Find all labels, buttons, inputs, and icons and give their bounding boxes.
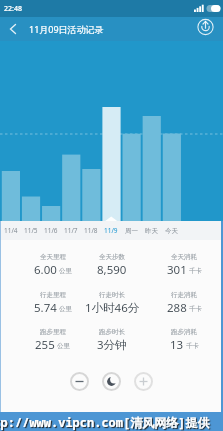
- staticText: 5.74: [34, 300, 57, 316]
- staticText: 千卡: [186, 342, 199, 350]
- staticText: 今天: [165, 227, 178, 235]
- staticText: 周一: [125, 227, 138, 235]
- staticText: 全天消耗: [171, 253, 197, 261]
- button[interactable]: [102, 372, 121, 391]
- button[interactable]: 11/5: [21, 221, 41, 240]
- staticText: 公里: [59, 305, 72, 313]
- staticText: 全天步数: [99, 253, 125, 261]
- button[interactable]: [70, 372, 89, 391]
- staticText: 11/9: [104, 226, 118, 235]
- staticText: 11/8: [84, 226, 98, 235]
- staticText: 3分钟: [97, 337, 127, 353]
- button[interactable]: 今天: [161, 221, 181, 240]
- button[interactable]: 11/8: [81, 221, 101, 240]
- staticText: 6.00: [34, 262, 57, 278]
- button[interactable]: [189, 17, 223, 41]
- staticText: 全天里程: [40, 253, 66, 261]
- button[interactable]: 11/7: [61, 221, 81, 240]
- button[interactable]: 11/6: [41, 221, 61, 240]
- staticText: 11月09日活动记录: [29, 23, 104, 35]
- button[interactable]: 周一: [121, 221, 141, 240]
- staticText: 行走消耗: [171, 291, 197, 299]
- button[interactable]: 昨天: [141, 221, 161, 240]
- staticText: 13: [170, 337, 184, 353]
- staticText: 跑步里程: [40, 328, 66, 336]
- staticText: 行走时长: [99, 291, 125, 299]
- staticText: 11/6: [44, 226, 58, 235]
- staticText: 千卡: [189, 267, 202, 275]
- button[interactable]: [134, 372, 153, 391]
- staticText: 288: [167, 300, 187, 316]
- button[interactable]: [0, 17, 26, 41]
- button[interactable]: 11/4: [1, 221, 21, 240]
- staticText: 255: [35, 337, 55, 353]
- staticText: 千卡: [189, 305, 202, 313]
- staticText: 昨天: [145, 227, 158, 235]
- staticText: 11/4: [4, 226, 18, 235]
- staticText: 22:48: [4, 4, 22, 14]
- staticText: 8,590: [97, 262, 127, 278]
- staticText: http://www.vipcn.com[清风网络]提供: [0, 414, 223, 430]
- staticText: 11/5: [24, 226, 38, 235]
- staticText: 公里: [57, 342, 70, 350]
- staticText: 11/7: [64, 226, 78, 235]
- staticText: 跑步消耗: [171, 328, 197, 336]
- staticText: 跑步时长: [99, 328, 125, 336]
- staticText: 1小时46分: [85, 300, 140, 316]
- button[interactable]: 11/9: [101, 221, 121, 240]
- staticText: 301: [167, 262, 187, 278]
- staticText: 行走里程: [40, 291, 66, 299]
- staticText: 公里: [59, 267, 72, 275]
